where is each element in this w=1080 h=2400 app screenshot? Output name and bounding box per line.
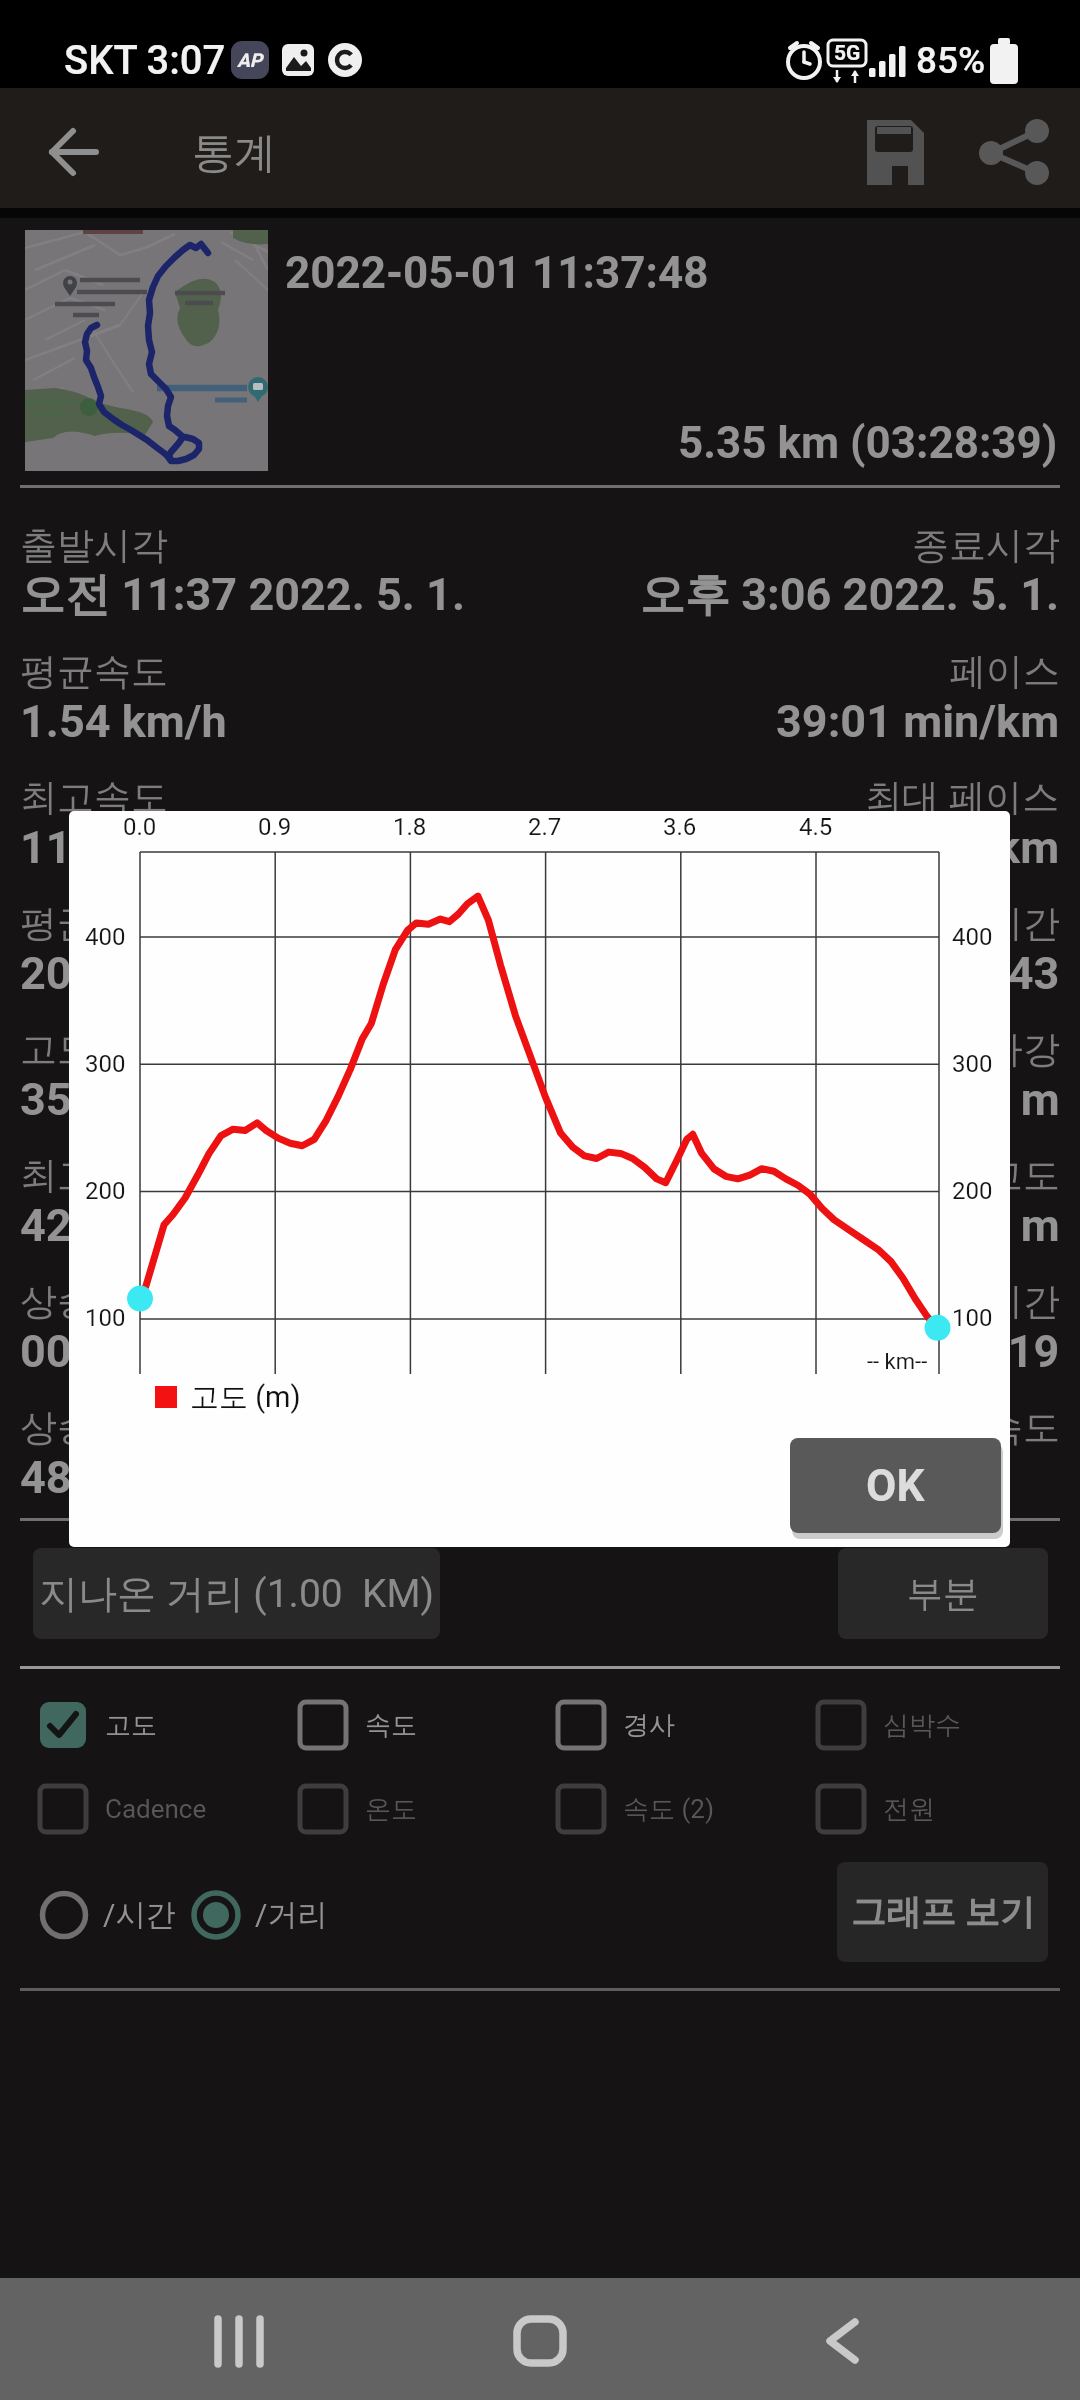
- staticText: 85%: [916, 39, 986, 82]
- staticText: 357 m: [20, 1073, 148, 1126]
- staticText: 4.5: [799, 813, 833, 841]
- staticText: 고도: [105, 1709, 157, 1742]
- staticText: 그래프 보기: [851, 1890, 1035, 1934]
- staticText: 200: [952, 1177, 993, 1205]
- staticText: 400: [85, 923, 126, 951]
- staticText: 300: [952, 1050, 993, 1078]
- staticText: OK: [866, 1460, 925, 1512]
- button[interactable]: /거리: [192, 1891, 382, 1939]
- staticText: 오후 3:06 2022. 5. 1.: [640, 567, 1060, 624]
- staticText: 100: [952, 1304, 993, 1332]
- staticText: 20:32 min/km: [20, 947, 304, 1000]
- staticText: Cadence: [105, 1794, 207, 1824]
- staticText: 05:02 min/km: [776, 821, 1060, 874]
- staticText: 최고고도: [20, 1152, 168, 1199]
- button[interactable]: 심박수: [818, 1702, 1048, 1748]
- staticText: 100: [85, 1304, 126, 1332]
- staticText: /시간: [103, 1896, 176, 1934]
- staticText: 382 m: [932, 1073, 1060, 1126]
- staticText: 54 m: [958, 1199, 1060, 1252]
- staticText: AP: [237, 49, 263, 71]
- staticText: 평균속도: [20, 648, 168, 695]
- staticText: 운동시간: [912, 900, 1060, 947]
- staticText: 상승속도: [20, 1404, 168, 1451]
- staticText: 고도 (m): [190, 1379, 301, 1416]
- button[interactable]: [30, 122, 120, 182]
- staticText: 최대 페이스: [865, 774, 1060, 821]
- button[interactable]: OK: [790, 1438, 1001, 1533]
- staticText: 종료시각: [912, 522, 1060, 569]
- staticText: 속도 (2): [623, 1793, 715, 1826]
- button[interactable]: 경사: [558, 1702, 788, 1748]
- button[interactable]: 그래프 보기: [837, 1862, 1048, 1962]
- staticText: 지나온 거리 (1.00 KM): [39, 1569, 435, 1618]
- button[interactable]: /시간: [40, 1891, 230, 1939]
- button[interactable]: [845, 110, 937, 198]
- staticText: 2022-05-01 11:37:48: [285, 247, 709, 299]
- button[interactable]: [798, 2298, 884, 2384]
- button[interactable]: 전원: [818, 1786, 1048, 1832]
- staticText: 부분: [907, 1571, 979, 1616]
- staticText: 경사: [623, 1709, 675, 1742]
- button[interactable]: 지나온 거리 (1.00 KM): [33, 1548, 440, 1639]
- staticText: 5.35 km (03:28:39): [678, 417, 1058, 469]
- staticText: 고도하강: [912, 1026, 1060, 1073]
- staticText: 전원: [883, 1793, 935, 1826]
- staticText: 5G: [834, 41, 861, 66]
- staticText: 300: [85, 1050, 126, 1078]
- staticText: 하강시간: [912, 1278, 1060, 1325]
- button[interactable]: 속도 (2): [558, 1786, 788, 1832]
- staticText: 200: [85, 1177, 126, 1205]
- staticText: 481 m/h: [20, 1451, 190, 1504]
- staticText: 오전 11:37 2022. 5. 1.: [20, 567, 465, 624]
- button[interactable]: 고도: [40, 1702, 270, 1748]
- staticText: 1.54 km/h: [20, 695, 227, 748]
- staticText: 고도상승: [20, 1026, 168, 1073]
- staticText: 평균 페이스: [20, 900, 215, 947]
- staticText: SKT 3:07: [64, 37, 226, 84]
- staticText: 0.0: [123, 813, 157, 841]
- staticText: 39:01 min/km: [776, 695, 1060, 748]
- staticText: -- km--: [867, 1349, 928, 1375]
- button[interactable]: [962, 110, 1057, 198]
- staticText: 속도: [365, 1709, 417, 1742]
- button[interactable]: Cadence: [40, 1786, 270, 1832]
- staticText: 온도: [365, 1793, 417, 1826]
- button[interactable]: [25, 230, 268, 471]
- staticText: 2.7: [528, 813, 562, 841]
- button[interactable]: [196, 2298, 282, 2384]
- staticText: 426 m: [20, 1199, 148, 1252]
- staticText: 통계: [192, 127, 276, 180]
- staticText: 최고속도: [20, 774, 168, 821]
- staticText: /거리: [255, 1896, 328, 1934]
- staticText: 하강속도: [912, 1404, 1060, 1451]
- staticText: 출발시각: [20, 522, 168, 569]
- staticText: 00:58:26: [20, 1325, 201, 1378]
- staticText: 페이스: [949, 648, 1060, 695]
- staticText: 0.9: [258, 813, 292, 841]
- button[interactable]: 온도: [300, 1786, 530, 1832]
- button[interactable]: 속도: [300, 1702, 530, 1748]
- staticText: 3.6: [663, 813, 697, 841]
- button[interactable]: 부분: [838, 1548, 1048, 1639]
- staticText: 최저고도: [912, 1152, 1060, 1199]
- staticText: 심박수: [883, 1709, 961, 1742]
- staticText: 1.8: [393, 813, 427, 841]
- staticText: 400: [952, 923, 993, 951]
- staticText: 11.91 km/h: [20, 821, 253, 874]
- staticText: 01:07:19: [879, 1325, 1060, 1378]
- button[interactable]: [497, 2298, 583, 2384]
- staticText: 02:28:43: [879, 947, 1060, 1000]
- staticText: 상승시간: [20, 1278, 168, 1325]
